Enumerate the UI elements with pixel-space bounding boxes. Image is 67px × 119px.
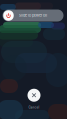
staticText: slide to power off [19, 13, 47, 18]
staticText: Cancel [28, 106, 39, 109]
button[interactable]: slide to power off [2, 9, 63, 21]
button[interactable]: Cancel [27, 89, 40, 109]
